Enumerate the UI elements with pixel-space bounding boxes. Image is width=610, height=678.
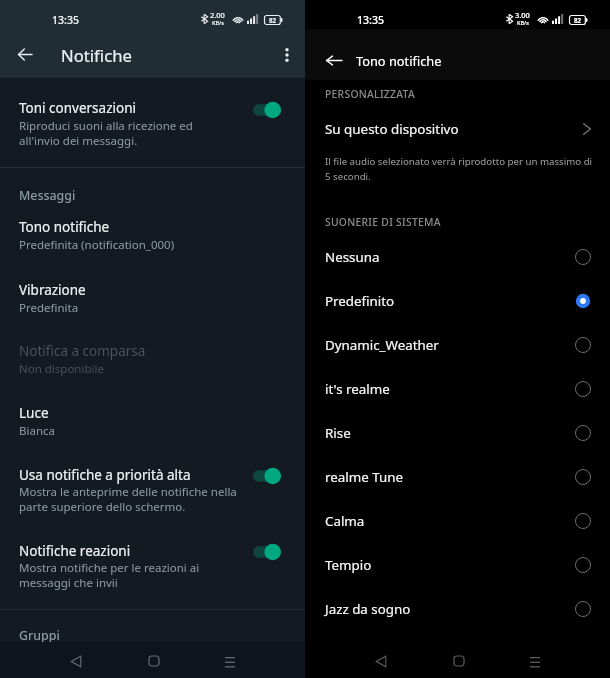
- staticText: Toni conversazioni: [19, 99, 136, 117]
- staticText: Predefinito: [325, 292, 395, 310]
- staticText: KB/s: [517, 19, 529, 26]
- button[interactable]: realme Tune: [305, 455, 610, 499]
- button[interactable]: Tempio: [305, 543, 610, 587]
- staticText: Notifiche: [61, 44, 132, 67]
- staticText: 13:35: [357, 13, 385, 27]
- button[interactable]: Home: [138, 645, 170, 677]
- staticText: Mostra le anteprime delle notifiche nell…: [19, 484, 237, 500]
- button[interactable]: Toggle setting: [253, 100, 281, 120]
- staticText: Tono notifiche: [356, 52, 442, 69]
- button[interactable]: Notifiche reazioni: [0, 536, 305, 596]
- staticText: Notifiche reazioni: [19, 542, 131, 560]
- staticText: Nessuna: [325, 248, 380, 266]
- button[interactable]: Toggle setting: [253, 542, 281, 562]
- button[interactable]: Su questo dispositivo: [305, 112, 610, 146]
- staticText: Il file audio selezionato verrà riprodot…: [325, 155, 593, 168]
- button[interactable]: Toggle setting: [253, 466, 281, 486]
- staticText: realme Tune: [325, 468, 403, 486]
- staticText: Predefinita (notification_000): [19, 237, 175, 253]
- staticText: it's realme: [325, 380, 390, 398]
- button[interactable]: Jazz da sogno: [305, 587, 610, 631]
- staticText: 2.00: [210, 10, 225, 20]
- staticText: 82: [269, 16, 277, 24]
- button[interactable]: Predefinito: [305, 279, 610, 323]
- button[interactable]: Notifica a comparsa: [0, 336, 305, 383]
- button[interactable]: Home: [443, 645, 475, 677]
- button[interactable]: Vibrazione: [0, 275, 305, 322]
- staticText: 3.00: [515, 10, 530, 20]
- staticText: Jazz da sogno: [325, 600, 411, 618]
- button[interactable]: Toni conversazioni: [0, 86, 305, 162]
- staticText: 5 secondi.: [325, 170, 371, 183]
- button[interactable]: Back: [60, 645, 92, 677]
- staticText: Riproduci suoni alla ricezione ed: [19, 118, 193, 134]
- staticText: messaggi che invii: [19, 575, 118, 591]
- staticText: Gruppi: [19, 627, 60, 644]
- staticText: PERSONALIZZATA: [325, 87, 415, 101]
- staticText: Bianca: [19, 423, 55, 439]
- staticText: all'invio dei messaggi.: [19, 133, 138, 149]
- staticText: Luce: [19, 404, 49, 422]
- button[interactable]: Luce: [0, 398, 305, 445]
- staticText: 82: [574, 16, 582, 24]
- staticText: KB/s: [212, 19, 224, 26]
- button[interactable]: Nessuna: [305, 235, 610, 279]
- button[interactable]: Rise: [305, 411, 610, 455]
- staticText: SUONERIE DI SISTEMA: [325, 215, 441, 229]
- button[interactable]: More options: [270, 38, 303, 71]
- staticText: Rise: [325, 424, 351, 442]
- button[interactable]: Navigate up: [8, 38, 41, 71]
- staticText: Dynamic_Weather: [325, 336, 439, 354]
- button[interactable]: Tono notifiche: [0, 211, 305, 258]
- staticText: Calma: [325, 512, 365, 530]
- staticText: Mostra notifiche per le reazioni ai: [19, 560, 200, 576]
- staticText: parte superiore dello schermo.: [19, 499, 186, 515]
- button[interactable]: Dynamic_Weather: [305, 323, 610, 367]
- staticText: Tempio: [325, 556, 372, 574]
- button[interactable]: Recent apps: [214, 645, 246, 677]
- button[interactable]: Back: [365, 645, 397, 677]
- button[interactable]: Recent apps: [519, 645, 551, 677]
- staticText: Usa notifiche a priorità alta: [19, 466, 191, 484]
- staticText: Tono notifiche: [19, 218, 110, 236]
- staticText: Su questo dispositivo: [325, 120, 459, 138]
- staticText: 13:35: [52, 13, 80, 27]
- button[interactable]: Navigate up: [317, 44, 350, 77]
- staticText: Messaggi: [19, 187, 76, 204]
- staticText: Predefinita: [19, 300, 79, 316]
- button[interactable]: Calma: [305, 499, 610, 543]
- button[interactable]: it's realme: [305, 367, 610, 411]
- staticText: Notifica a comparsa: [19, 342, 146, 360]
- staticText: Non disponibile: [19, 361, 104, 377]
- staticText: Vibrazione: [19, 281, 86, 299]
- button[interactable]: Usa notifiche a priorità alta: [0, 460, 305, 520]
